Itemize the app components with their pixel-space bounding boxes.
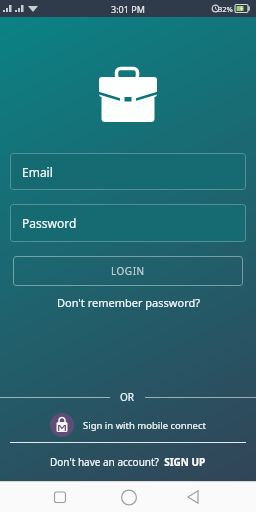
button[interactable]: [40, 481, 79, 512]
button[interactable]: Email: [10, 153, 246, 190]
staticText: Sign in with mobile connect: [83, 419, 206, 432]
button[interactable]: [109, 481, 148, 512]
button[interactable]: Don't remember password?: [0, 295, 256, 310]
button[interactable]: Sign in with mobile connect: [50, 413, 206, 437]
button[interactable]: [173, 481, 212, 512]
staticText: 3:01 PM: [111, 3, 145, 15]
button[interactable]: Don't have an account? SIGN UP: [0, 455, 256, 469]
button[interactable]: Password: [10, 204, 246, 242]
staticText: Don't remember password?: [57, 295, 200, 310]
staticText: Password: [22, 215, 77, 231]
staticText: Email: [22, 164, 53, 180]
staticText: 32%: [218, 4, 233, 14]
button[interactable]: LOGIN: [13, 256, 243, 286]
staticText: OR: [120, 390, 135, 404]
staticText: LOGIN: [111, 264, 145, 278]
staticText: Don't have an account? SIGN UP: [50, 455, 206, 469]
